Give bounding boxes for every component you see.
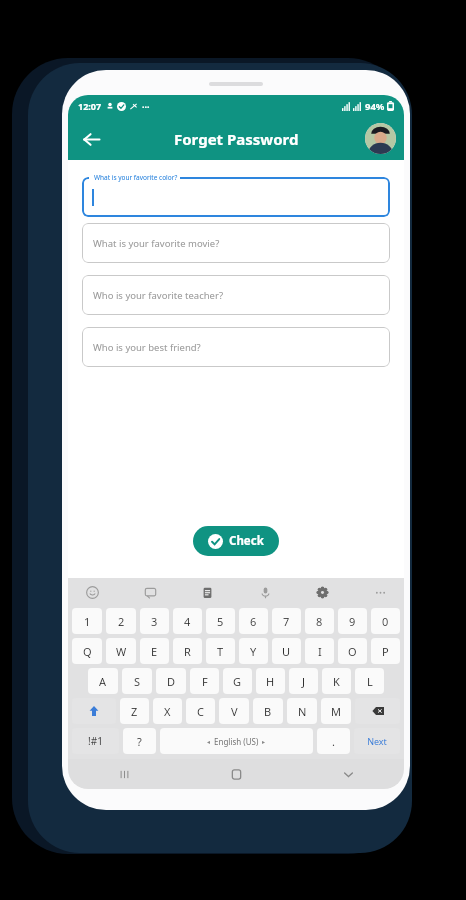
staticText: V	[231, 704, 238, 719]
staticText: 94%	[365, 100, 385, 113]
staticText: D	[167, 674, 176, 689]
button[interactable]: G	[223, 668, 252, 694]
staticText: 0	[382, 614, 389, 629]
staticText: J	[302, 674, 306, 689]
button[interactable]: S	[122, 668, 152, 694]
staticText: T	[217, 644, 224, 659]
button[interactable]: More options	[370, 582, 390, 602]
staticText: ?	[137, 734, 142, 749]
button[interactable]: B	[253, 698, 283, 724]
button[interactable]: Hide keyboard	[330, 759, 366, 789]
staticText: O	[348, 644, 357, 659]
button[interactable]: W	[106, 638, 136, 664]
button[interactable]: C	[186, 698, 215, 724]
staticText: !#1	[88, 734, 103, 748]
button[interactable]: Back	[74, 122, 108, 156]
button[interactable]: R	[173, 638, 202, 664]
button[interactable]: Settings	[312, 582, 332, 602]
button[interactable]: 0	[371, 608, 400, 634]
staticText: N	[298, 704, 307, 719]
button[interactable]: Next	[354, 728, 400, 754]
staticText: 1	[84, 614, 91, 629]
button[interactable]: .	[317, 728, 350, 754]
button[interactable]: K	[322, 668, 351, 694]
button[interactable]: Z	[120, 698, 149, 724]
staticText: S	[134, 674, 141, 689]
button[interactable]: 1	[72, 608, 102, 634]
button[interactable]: Emoji	[82, 582, 102, 602]
button[interactable]: 6	[239, 608, 268, 634]
button[interactable]	[82, 177, 390, 217]
button[interactable]: Who is your best friend?	[82, 327, 390, 367]
button[interactable]: I	[305, 638, 334, 664]
staticText: P	[382, 644, 389, 659]
button[interactable]: Q	[72, 638, 102, 664]
staticText: 9	[349, 614, 356, 629]
staticText: ◂	[207, 738, 211, 745]
button[interactable]: H	[256, 668, 285, 694]
button[interactable]: Shift	[72, 698, 116, 724]
button[interactable]: Check	[193, 526, 279, 556]
staticText: Y	[250, 644, 257, 659]
button[interactable]: Profile	[365, 123, 396, 154]
button[interactable]: 3	[140, 608, 169, 634]
staticText: A	[99, 674, 107, 689]
button[interactable]: U	[272, 638, 301, 664]
button[interactable]: M	[321, 698, 351, 724]
staticText: Who is your favorite teacher?	[93, 289, 224, 302]
button[interactable]: 8	[305, 608, 334, 634]
button[interactable]: J	[289, 668, 318, 694]
staticText: B	[264, 704, 272, 719]
staticText: Forget Password	[174, 129, 299, 149]
button[interactable]: T	[206, 638, 235, 664]
button[interactable]: Who is your favorite teacher?	[82, 275, 390, 315]
button[interactable]: V	[219, 698, 249, 724]
button[interactable]: 4	[173, 608, 202, 634]
button[interactable]: L	[355, 668, 384, 694]
staticText: Q	[83, 644, 92, 659]
button[interactable]: Y	[239, 638, 268, 664]
staticText: U	[282, 644, 291, 659]
button[interactable]: ◂	[160, 728, 313, 754]
button[interactable]: D	[156, 668, 186, 694]
button[interactable]: F	[190, 668, 219, 694]
button[interactable]: 9	[338, 608, 367, 634]
staticText: I	[318, 644, 322, 659]
button[interactable]: What is your favorite movie?	[82, 223, 390, 263]
button[interactable]: X	[153, 698, 182, 724]
button[interactable]: ?	[123, 728, 156, 754]
button[interactable]: Home	[218, 759, 254, 789]
button[interactable]: Stickers	[140, 582, 160, 602]
button[interactable]: Backspace	[355, 698, 400, 724]
staticText: W	[116, 644, 127, 659]
button[interactable]: N	[287, 698, 317, 724]
staticText: 8	[316, 614, 323, 629]
button[interactable]: O	[338, 638, 367, 664]
staticText: 3	[151, 614, 158, 629]
staticText: G	[233, 674, 242, 689]
button[interactable]: Voice input	[255, 582, 275, 602]
staticText: Next	[367, 735, 387, 747]
button[interactable]: 7	[272, 608, 301, 634]
staticText: 4	[184, 614, 191, 629]
button[interactable]: !#1	[72, 728, 119, 754]
button[interactable]: 2	[106, 608, 136, 634]
button[interactable]: A	[88, 668, 118, 694]
staticText: M	[331, 704, 341, 719]
staticText: Check	[229, 533, 264, 549]
staticText: 12:07	[78, 100, 102, 112]
staticText: 7	[283, 614, 290, 629]
button[interactable]: P	[371, 638, 400, 664]
staticText: Z	[131, 704, 138, 719]
staticText: ···	[142, 100, 150, 112]
staticText: L	[367, 674, 373, 689]
staticText: C	[197, 704, 204, 719]
staticText: English (US)	[214, 736, 259, 747]
staticText: H	[266, 674, 275, 689]
button[interactable]: E	[140, 638, 169, 664]
button[interactable]: Clipboard	[197, 582, 217, 602]
staticText: What is your favorite color?	[94, 173, 178, 182]
button[interactable]: 5	[206, 608, 235, 634]
staticText: 2	[118, 614, 125, 629]
button[interactable]: Recents	[106, 759, 142, 789]
